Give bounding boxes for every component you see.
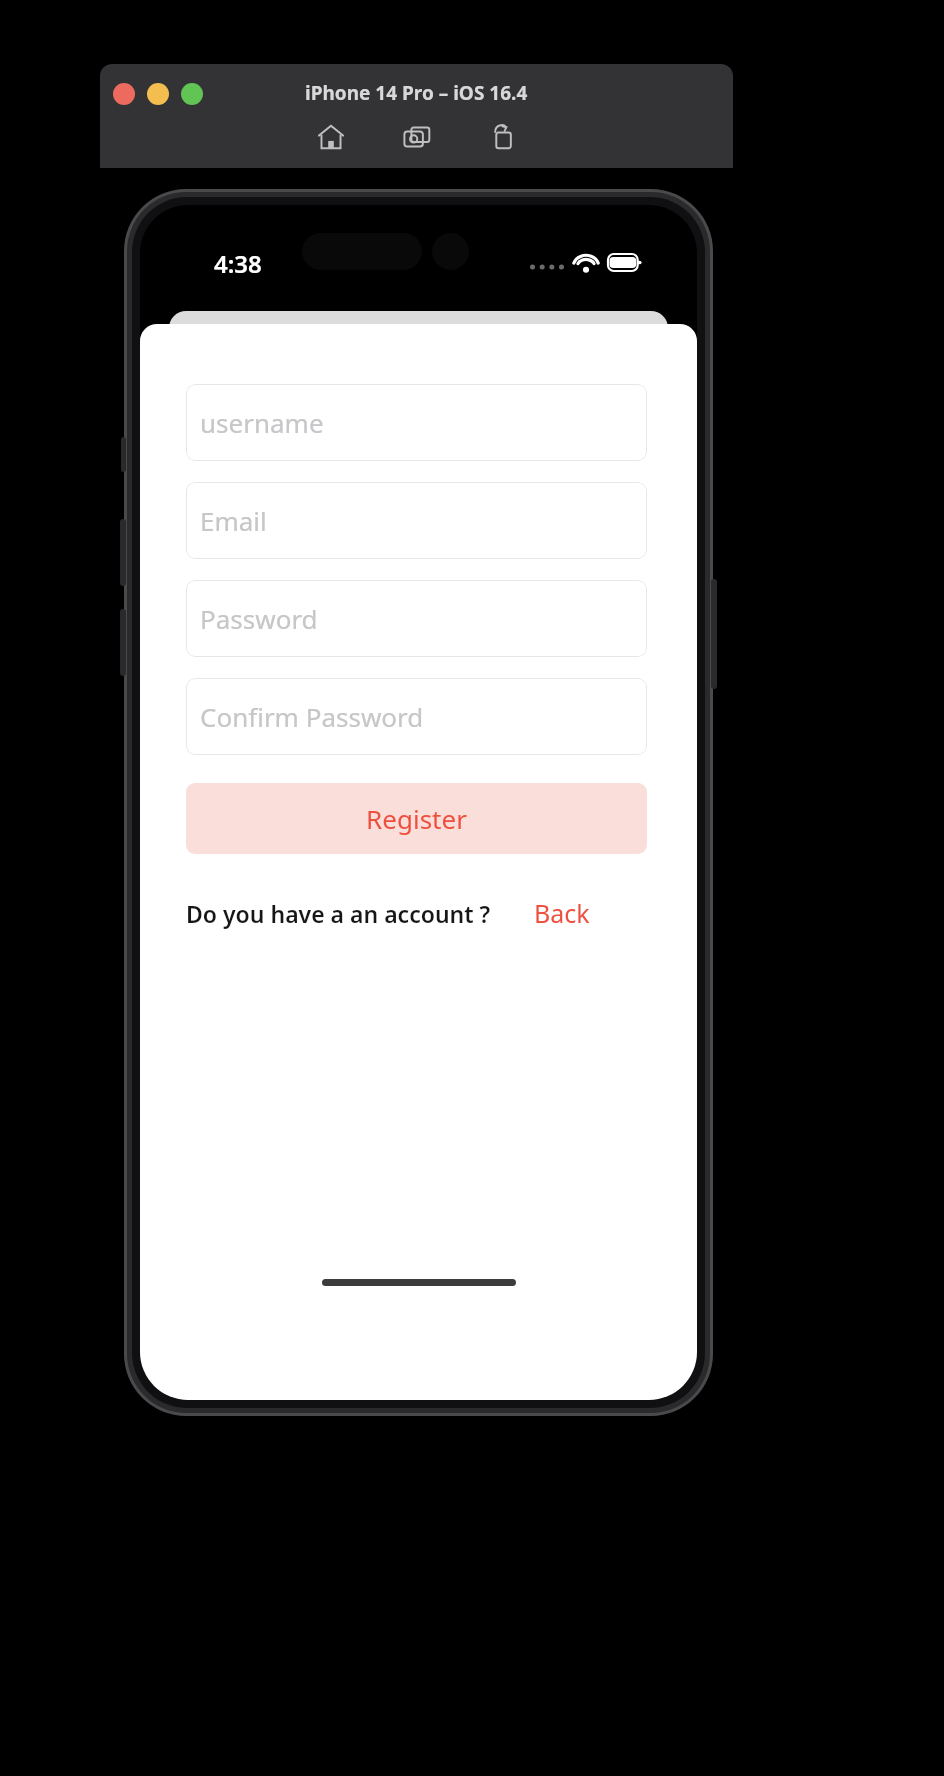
staticText: username [200, 405, 324, 440]
staticText: Password [200, 601, 318, 636]
button[interactable]: Email [186, 482, 647, 559]
button[interactable]: Confirm Password [186, 678, 647, 755]
staticText: Do you have a an account ? [186, 898, 491, 929]
button[interactable]: Close [113, 83, 135, 105]
button[interactable]: Rotate [485, 119, 521, 155]
staticText: 4:38 [214, 247, 262, 280]
staticText: Register [366, 801, 467, 836]
button[interactable]: Screenshot [399, 119, 435, 155]
button[interactable]: username [186, 384, 647, 461]
staticText: Back [534, 896, 590, 930]
button[interactable]: Back [532, 894, 592, 932]
button[interactable]: Minimize [147, 83, 169, 105]
button[interactable]: Register [186, 783, 647, 854]
staticText: iPhone 14 Pro – iOS 16.4 [305, 80, 528, 106]
staticText: Email [200, 503, 267, 538]
button[interactable]: Home [313, 119, 349, 155]
button[interactable]: Zoom [181, 83, 203, 105]
staticText: Confirm Password [200, 699, 424, 734]
button[interactable]: Password [186, 580, 647, 657]
